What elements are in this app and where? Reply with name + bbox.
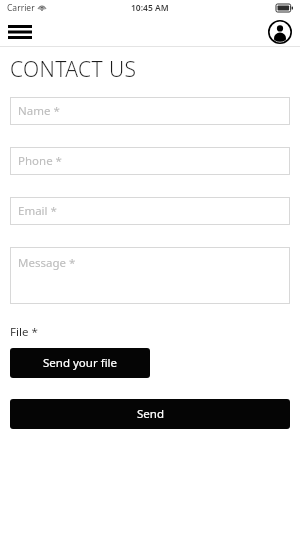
staticText: Name * bbox=[18, 103, 60, 119]
button[interactable]: Phone * bbox=[10, 147, 290, 175]
button[interactable]: Account bbox=[267, 19, 293, 45]
staticText: Phone * bbox=[18, 153, 62, 169]
staticText: Carrier bbox=[7, 2, 35, 14]
button[interactable]: Email * bbox=[10, 197, 290, 225]
staticText: Message * bbox=[18, 255, 76, 271]
button[interactable]: Send your file bbox=[10, 348, 150, 378]
staticText: 10:45 AM bbox=[131, 2, 169, 14]
staticText: Send bbox=[137, 406, 164, 422]
staticText: Email * bbox=[18, 203, 57, 219]
button[interactable]: Name * bbox=[10, 97, 290, 125]
button[interactable]: Send bbox=[10, 399, 290, 429]
button[interactable]: Menu bbox=[6, 20, 34, 44]
staticText: File * bbox=[10, 324, 38, 340]
staticText: CONTACT US bbox=[10, 55, 137, 84]
staticText: Send your file bbox=[43, 355, 118, 371]
button[interactable]: Message * bbox=[10, 247, 290, 304]
